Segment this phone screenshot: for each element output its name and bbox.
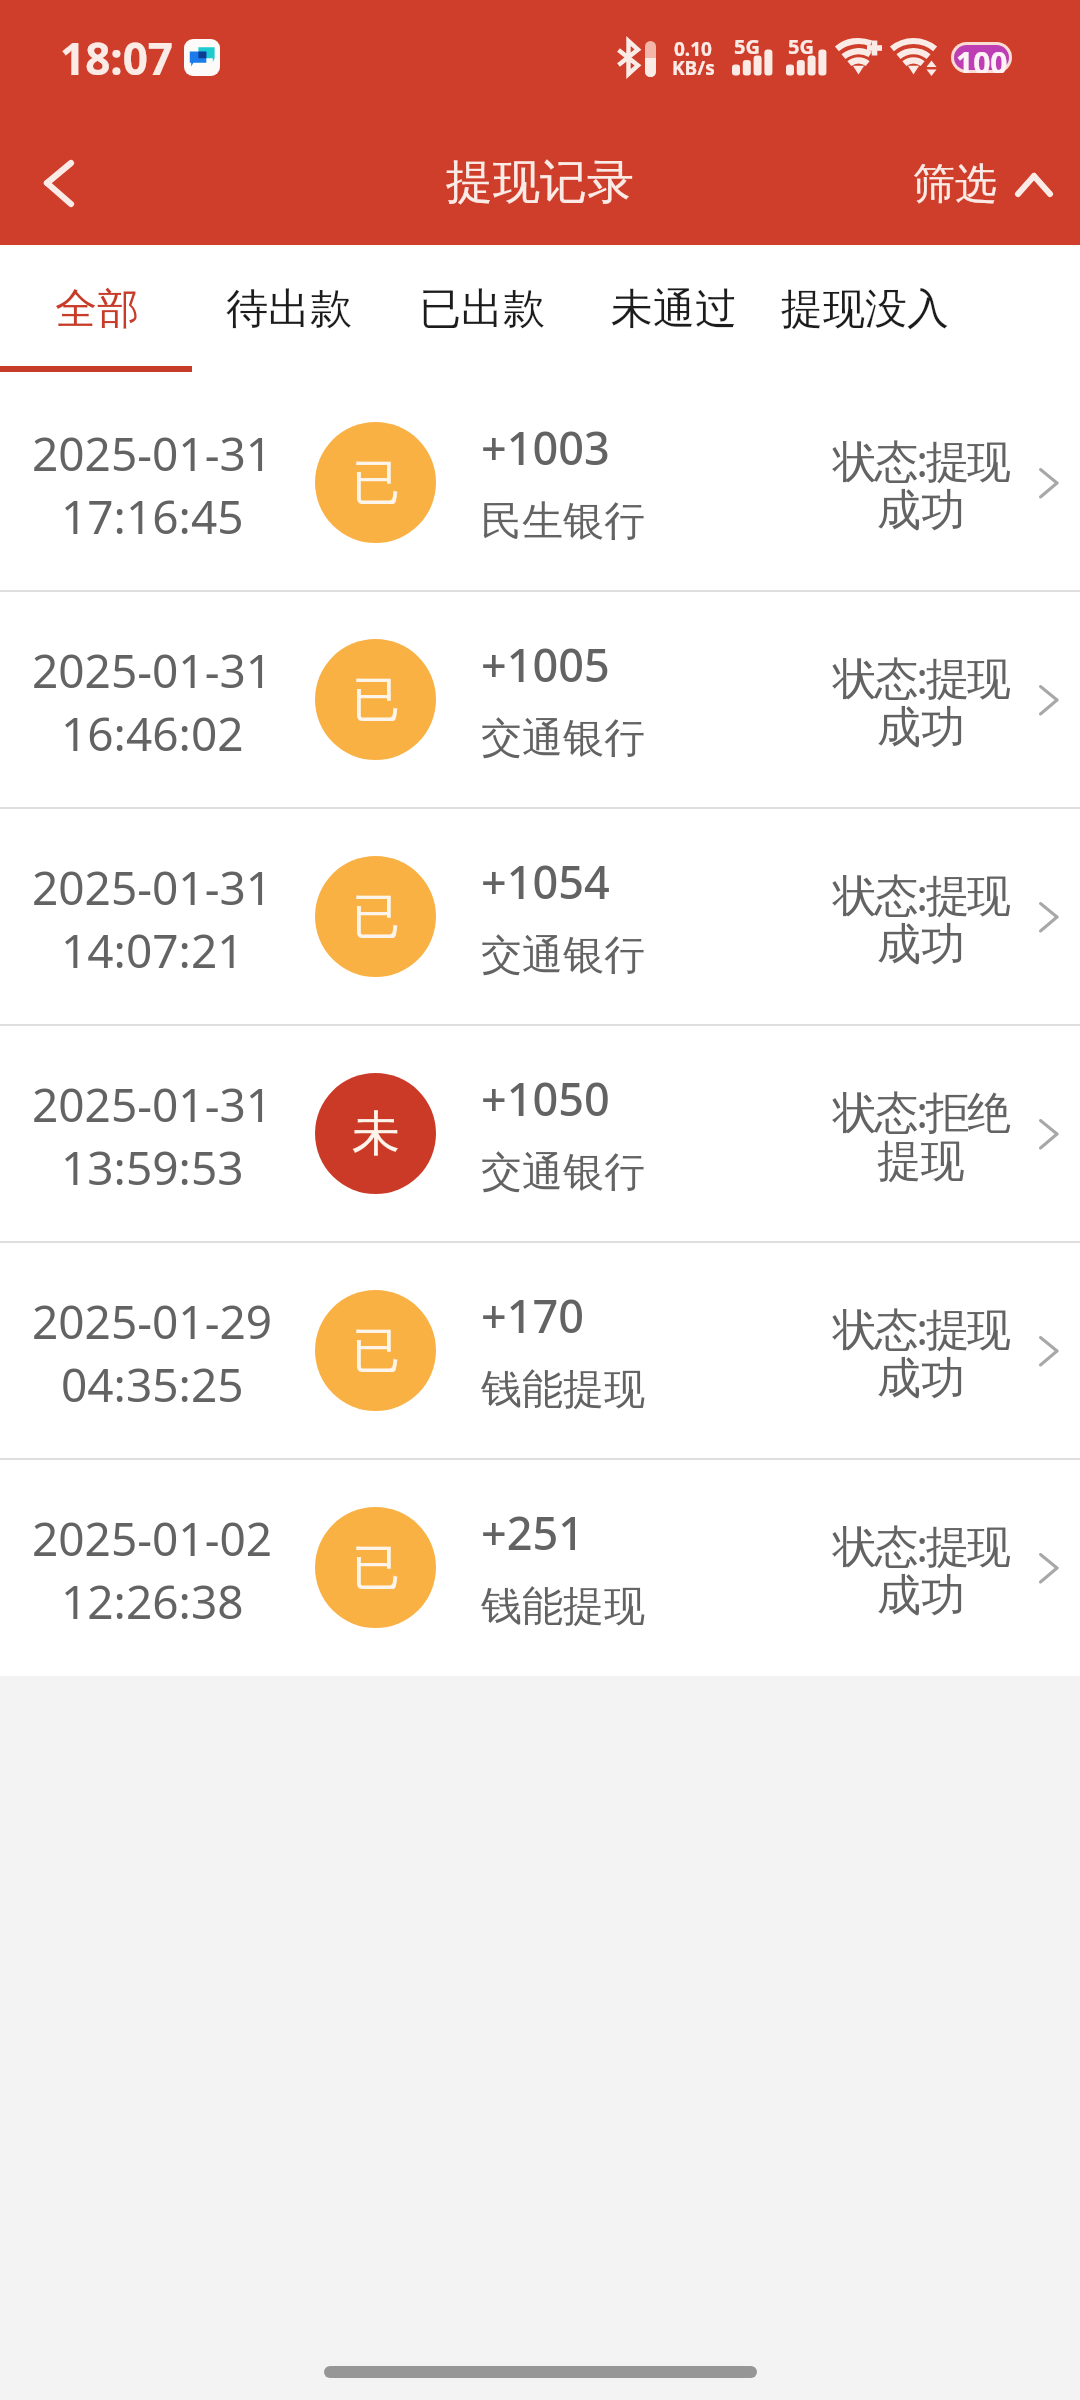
staticText: 0.10 [674, 36, 712, 62]
staticText: 17:16:45 [61, 485, 244, 548]
button[interactable]: 已出款 [387, 245, 577, 374]
staticText: 筛选 [913, 158, 997, 211]
staticText: 成功 [877, 1351, 965, 1406]
staticText: 13:59:53 [61, 1136, 244, 1199]
staticText: 状态:提现 [833, 647, 1009, 707]
button[interactable]: 提现没入 [750, 245, 980, 374]
button[interactable]: 2025-01-31 [0, 808, 1080, 1025]
staticText: 100 [956, 42, 1008, 73]
staticText: 成功 [877, 483, 965, 538]
staticText: +1003 [481, 417, 610, 478]
staticText: 已 [352, 670, 400, 730]
staticText: +251 [481, 1502, 584, 1563]
staticText: +1005 [481, 634, 610, 695]
staticText: +1050 [481, 1068, 610, 1129]
staticText: 提现记录 [446, 153, 634, 212]
staticText: 5G [734, 33, 760, 60]
staticText: 钱能提现 [481, 1581, 645, 1633]
button[interactable]: 2025-01-31 [0, 591, 1080, 808]
staticText: 2025-01-31 [32, 422, 273, 485]
button[interactable]: 待出款 [193, 245, 385, 374]
staticText: 2025-01-31 [32, 639, 273, 702]
staticText: 已 [352, 1538, 400, 1598]
staticText: 成功 [877, 1568, 965, 1623]
staticText: +170 [481, 1285, 584, 1346]
staticText: 已 [352, 887, 400, 947]
staticText: 2025-01-31 [32, 1073, 273, 1136]
staticText: 状态:提现 [833, 864, 1009, 924]
staticText: 已 [352, 453, 400, 513]
staticText: 钱能提现 [481, 1364, 645, 1416]
button[interactable]: 未通过 [579, 245, 769, 374]
staticText: 状态:提现 [833, 1515, 1009, 1575]
staticText: 交通银行 [481, 713, 645, 765]
staticText: 成功 [877, 917, 965, 972]
staticText: +1054 [481, 851, 610, 912]
staticText: 已出款 [419, 283, 545, 336]
button[interactable]: 2025-01-29 [0, 1242, 1080, 1459]
staticText: 已 [352, 1321, 400, 1381]
button[interactable]: 2025-01-31 [0, 374, 1080, 591]
staticText: 状态:提现 [833, 430, 1009, 490]
staticText: KB/s [672, 55, 715, 81]
staticText: 12:26:38 [61, 1570, 244, 1633]
button[interactable]: Back [16, 133, 120, 237]
staticText: 提现 [877, 1134, 965, 1189]
staticText: 未 [352, 1104, 400, 1164]
staticText: 04:35:25 [61, 1353, 244, 1416]
staticText: 14:07:21 [61, 919, 244, 982]
button[interactable]: 2025-01-02 [0, 1459, 1080, 1676]
staticText: 民生银行 [481, 496, 645, 548]
button[interactable]: 全部 [2, 245, 192, 374]
button[interactable]: 2025-01-31 [0, 1025, 1080, 1242]
staticText: 2025-01-31 [32, 856, 273, 919]
staticText: 未通过 [611, 283, 737, 336]
staticText: 状态:提现 [833, 1298, 1009, 1358]
staticText: 成功 [877, 700, 965, 755]
staticText: 2025-01-02 [32, 1507, 273, 1570]
staticText: 待出款 [226, 283, 352, 336]
staticText: 16:46:02 [61, 702, 244, 765]
button[interactable]: 筛选 [913, 158, 1054, 211]
staticText: 5G [788, 33, 814, 60]
staticText: 全部 [55, 283, 139, 336]
staticText: 提现没入 [781, 283, 949, 336]
staticText: 交通银行 [481, 1147, 645, 1199]
staticText: 状态:拒绝 [833, 1081, 1009, 1141]
staticText: 2025-01-29 [32, 1290, 273, 1353]
staticText: 18:07 [60, 28, 174, 88]
staticText: 交通银行 [481, 930, 645, 982]
